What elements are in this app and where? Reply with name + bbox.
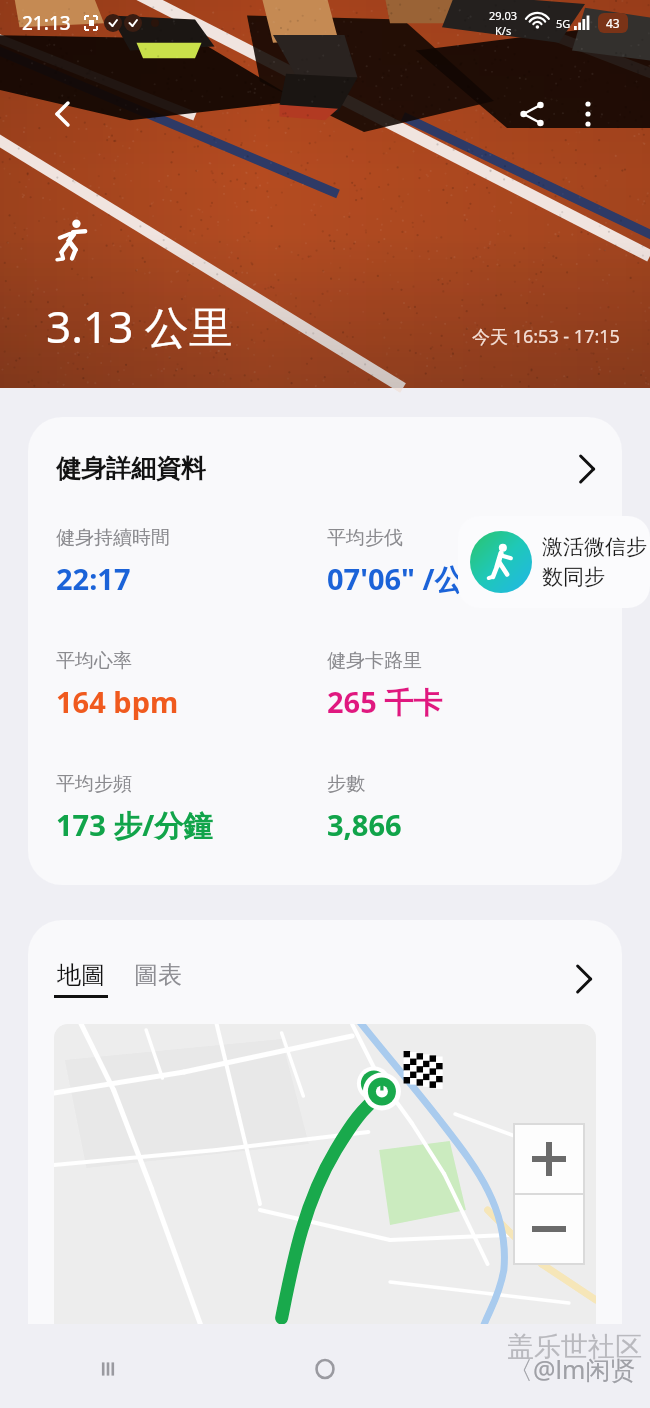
button[interactable]: 圖表 <box>134 960 182 998</box>
staticText: 盖乐世社区 <box>507 1330 642 1364</box>
button[interactable]: Back <box>30 86 86 142</box>
button[interactable]: Route map <box>54 1024 596 1324</box>
staticText: 平均心率 <box>56 649 132 673</box>
staticText: 22:17 <box>56 559 131 598</box>
staticText: 43 <box>606 15 620 31</box>
staticText: 07'06" /公里 <box>327 559 493 599</box>
button[interactable]: Zoom in <box>514 1124 584 1194</box>
button[interactable]: Share <box>504 86 560 142</box>
staticText: 健身卡路里 <box>327 649 422 673</box>
staticText: 164 bpm <box>56 682 179 721</box>
staticText: 健身持續時間 <box>56 526 170 550</box>
staticText: 平均步伐 <box>327 526 403 550</box>
staticText: 今天 16:53 - 17:15 <box>472 324 620 349</box>
staticText: 29.03 <box>489 8 518 23</box>
staticText: 圖表 <box>134 960 182 990</box>
staticText: 5G <box>556 16 571 31</box>
staticText: 21:13 <box>22 10 71 36</box>
button[interactable]: Home <box>216 1330 433 1408</box>
staticText: 173 步/分鐘 <box>56 805 213 845</box>
button[interactable]: Open map <box>564 962 598 996</box>
button[interactable]: Zoom out <box>514 1194 584 1264</box>
staticText: K/s <box>495 23 512 38</box>
button[interactable]: 激活微信步 <box>458 516 650 608</box>
staticText: 平均步頻 <box>56 772 132 796</box>
button[interactable]: Recents <box>0 1330 216 1408</box>
button[interactable]: 地圖 <box>54 960 108 998</box>
button[interactable]: 健身詳細資料 <box>28 417 622 885</box>
staticText: 步數 <box>327 772 365 796</box>
staticText: 地圖 <box>57 960 105 990</box>
staticText: 数同步 <box>542 564 605 590</box>
button[interactable]: More options <box>560 86 616 142</box>
staticText: 健身詳細資料 <box>56 453 206 484</box>
button[interactable]: Back <box>433 1330 650 1408</box>
staticText: 3.13 公里 <box>46 296 233 356</box>
staticText: 265 千卡 <box>327 682 443 722</box>
staticText: 〈@lm闲贤 <box>508 1352 636 1386</box>
staticText: 3,866 <box>327 805 402 844</box>
staticText: 激活微信步 <box>542 534 647 560</box>
